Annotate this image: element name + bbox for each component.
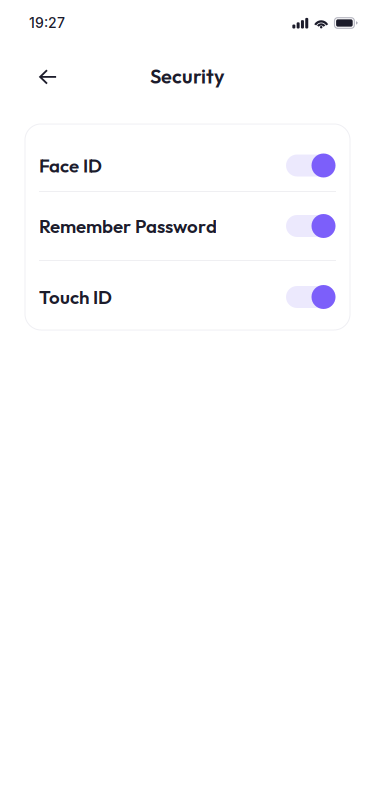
staticText: Remember Password <box>39 214 217 238</box>
button[interactable]: Remember Password <box>25 192 350 260</box>
staticText: Touch ID <box>39 285 112 309</box>
button[interactable]: Back <box>29 57 67 95</box>
button[interactable]: Touch ID <box>25 261 350 330</box>
staticText: Face ID <box>39 154 102 177</box>
staticText: Security <box>150 63 225 89</box>
button[interactable]: Face ID <box>25 140 350 191</box>
staticText: 19:27 <box>29 14 65 31</box>
